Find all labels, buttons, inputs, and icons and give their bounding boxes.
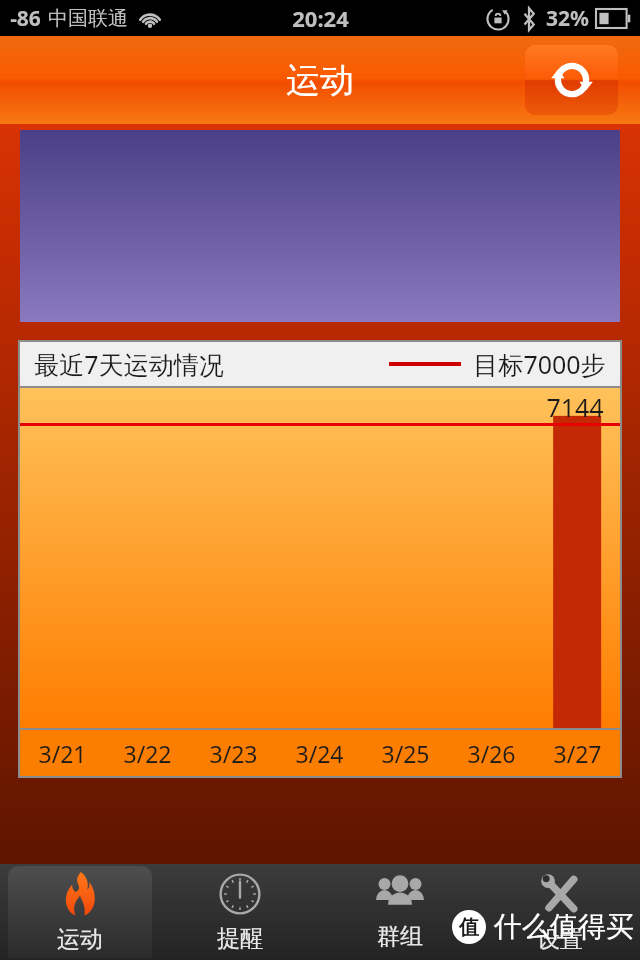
staticText: 3/23: [209, 738, 258, 769]
staticText: 3/26: [467, 738, 516, 769]
staticText: 最近7天运动情况: [34, 347, 224, 381]
staticText: 运动: [286, 59, 354, 102]
button[interactable]: [20, 130, 620, 322]
staticText: 3/21: [38, 738, 87, 769]
staticText: 中国联通: [48, 6, 128, 31]
staticText: 提醒: [217, 924, 263, 953]
staticText: 20:24: [292, 3, 349, 33]
button[interactable]: 运动: [8, 866, 152, 958]
staticText: 运动: [57, 925, 103, 954]
staticText: 3/24: [295, 738, 344, 769]
button[interactable]: 群组: [320, 864, 480, 960]
staticText: 什么值得买: [494, 909, 634, 944]
staticText: 目标7000步: [473, 347, 606, 381]
staticText: 3/27: [553, 738, 602, 769]
staticText: 设置: [537, 925, 583, 954]
button[interactable]: 设置: [480, 864, 640, 960]
staticText: 32%: [546, 4, 589, 33]
staticText: 值: [459, 915, 479, 940]
button[interactable]: Refresh: [525, 45, 618, 115]
staticText: 3/22: [123, 738, 172, 769]
staticText: 3/25: [381, 738, 430, 769]
button[interactable]: 提醒: [160, 864, 320, 960]
staticText: 群组: [377, 922, 423, 951]
staticText: 7144: [546, 390, 604, 424]
staticText: -86: [10, 4, 41, 33]
